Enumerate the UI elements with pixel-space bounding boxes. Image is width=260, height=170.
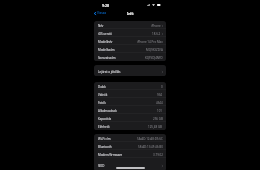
button[interactable]: Wi-Fi cím — [94, 134, 166, 142]
staticText: Modellszám — [98, 48, 115, 52]
staticText: Bluetooth — [98, 145, 112, 149]
staticText: Alkalmazások — [98, 109, 117, 113]
staticText: KQFSDJ4NFD — [145, 56, 163, 60]
staticText: 5A:AD:12:A8:D5:6C — [137, 137, 163, 141]
staticText: Fotók — [98, 101, 106, 105]
button[interactable]: Vissza — [94, 11, 107, 15]
staticText: Kapacitás — [98, 117, 112, 121]
button[interactable]: Modellnév — [94, 37, 166, 45]
staticText: 0 — [161, 85, 163, 89]
staticText: Modem/firmware — [98, 153, 123, 157]
button[interactable]: Videók — [94, 90, 166, 98]
button[interactable]: Alkalmazások — [94, 106, 166, 114]
staticText: Lejárat a jótállás — [98, 70, 121, 74]
button[interactable]: Modellszám — [94, 45, 166, 53]
staticText: Név — [98, 24, 104, 28]
staticText: Videók — [98, 93, 108, 97]
staticText: iOS-verzió — [98, 32, 112, 36]
staticText: 58:AD:13:4F:46:B0 — [138, 145, 163, 149]
button[interactable]: Elérhető — [94, 122, 166, 130]
staticText: iPhone 14 Pro Max — [137, 40, 163, 44]
button[interactable]: Fotók — [94, 98, 166, 106]
button[interactable]: Sorozatszám — [94, 53, 166, 61]
staticText: Infó — [127, 11, 134, 15]
staticText: SEID — [98, 164, 105, 168]
staticText: Wi-Fi cím — [98, 137, 111, 141]
button[interactable]: iOS-verzió — [94, 29, 166, 37]
staticText: Modellnév — [98, 40, 113, 44]
staticText: 256 GB — [153, 117, 163, 121]
staticText: Dalok — [98, 85, 106, 89]
staticText: 101 — [157, 109, 163, 113]
staticText: Sorozatszám — [98, 56, 116, 60]
staticText: 3.79.02 — [153, 153, 163, 157]
staticText: 125,48 GB — [148, 125, 163, 129]
button[interactable]: Dalok — [94, 82, 166, 90]
staticText: 18.6.2 — [152, 32, 161, 36]
button[interactable]: Kapacitás — [94, 114, 166, 122]
button[interactable]: Lejárat a jótállás — [94, 65, 166, 76]
button[interactable]: Modem/firmware — [94, 150, 166, 158]
staticText: Elérhető — [98, 125, 110, 129]
button[interactable]: Bluetooth — [94, 142, 166, 150]
button[interactable]: Név — [94, 21, 166, 29]
staticText: 9:28 — [102, 3, 110, 8]
staticText: iPhone — [151, 24, 161, 28]
staticText: Vissza — [97, 11, 107, 15]
staticText: MQ9X3ZD/A — [146, 48, 163, 52]
staticText: 934 — [157, 93, 163, 97]
staticText: 4644 — [156, 101, 163, 105]
button[interactable]: SEID — [94, 158, 166, 170]
